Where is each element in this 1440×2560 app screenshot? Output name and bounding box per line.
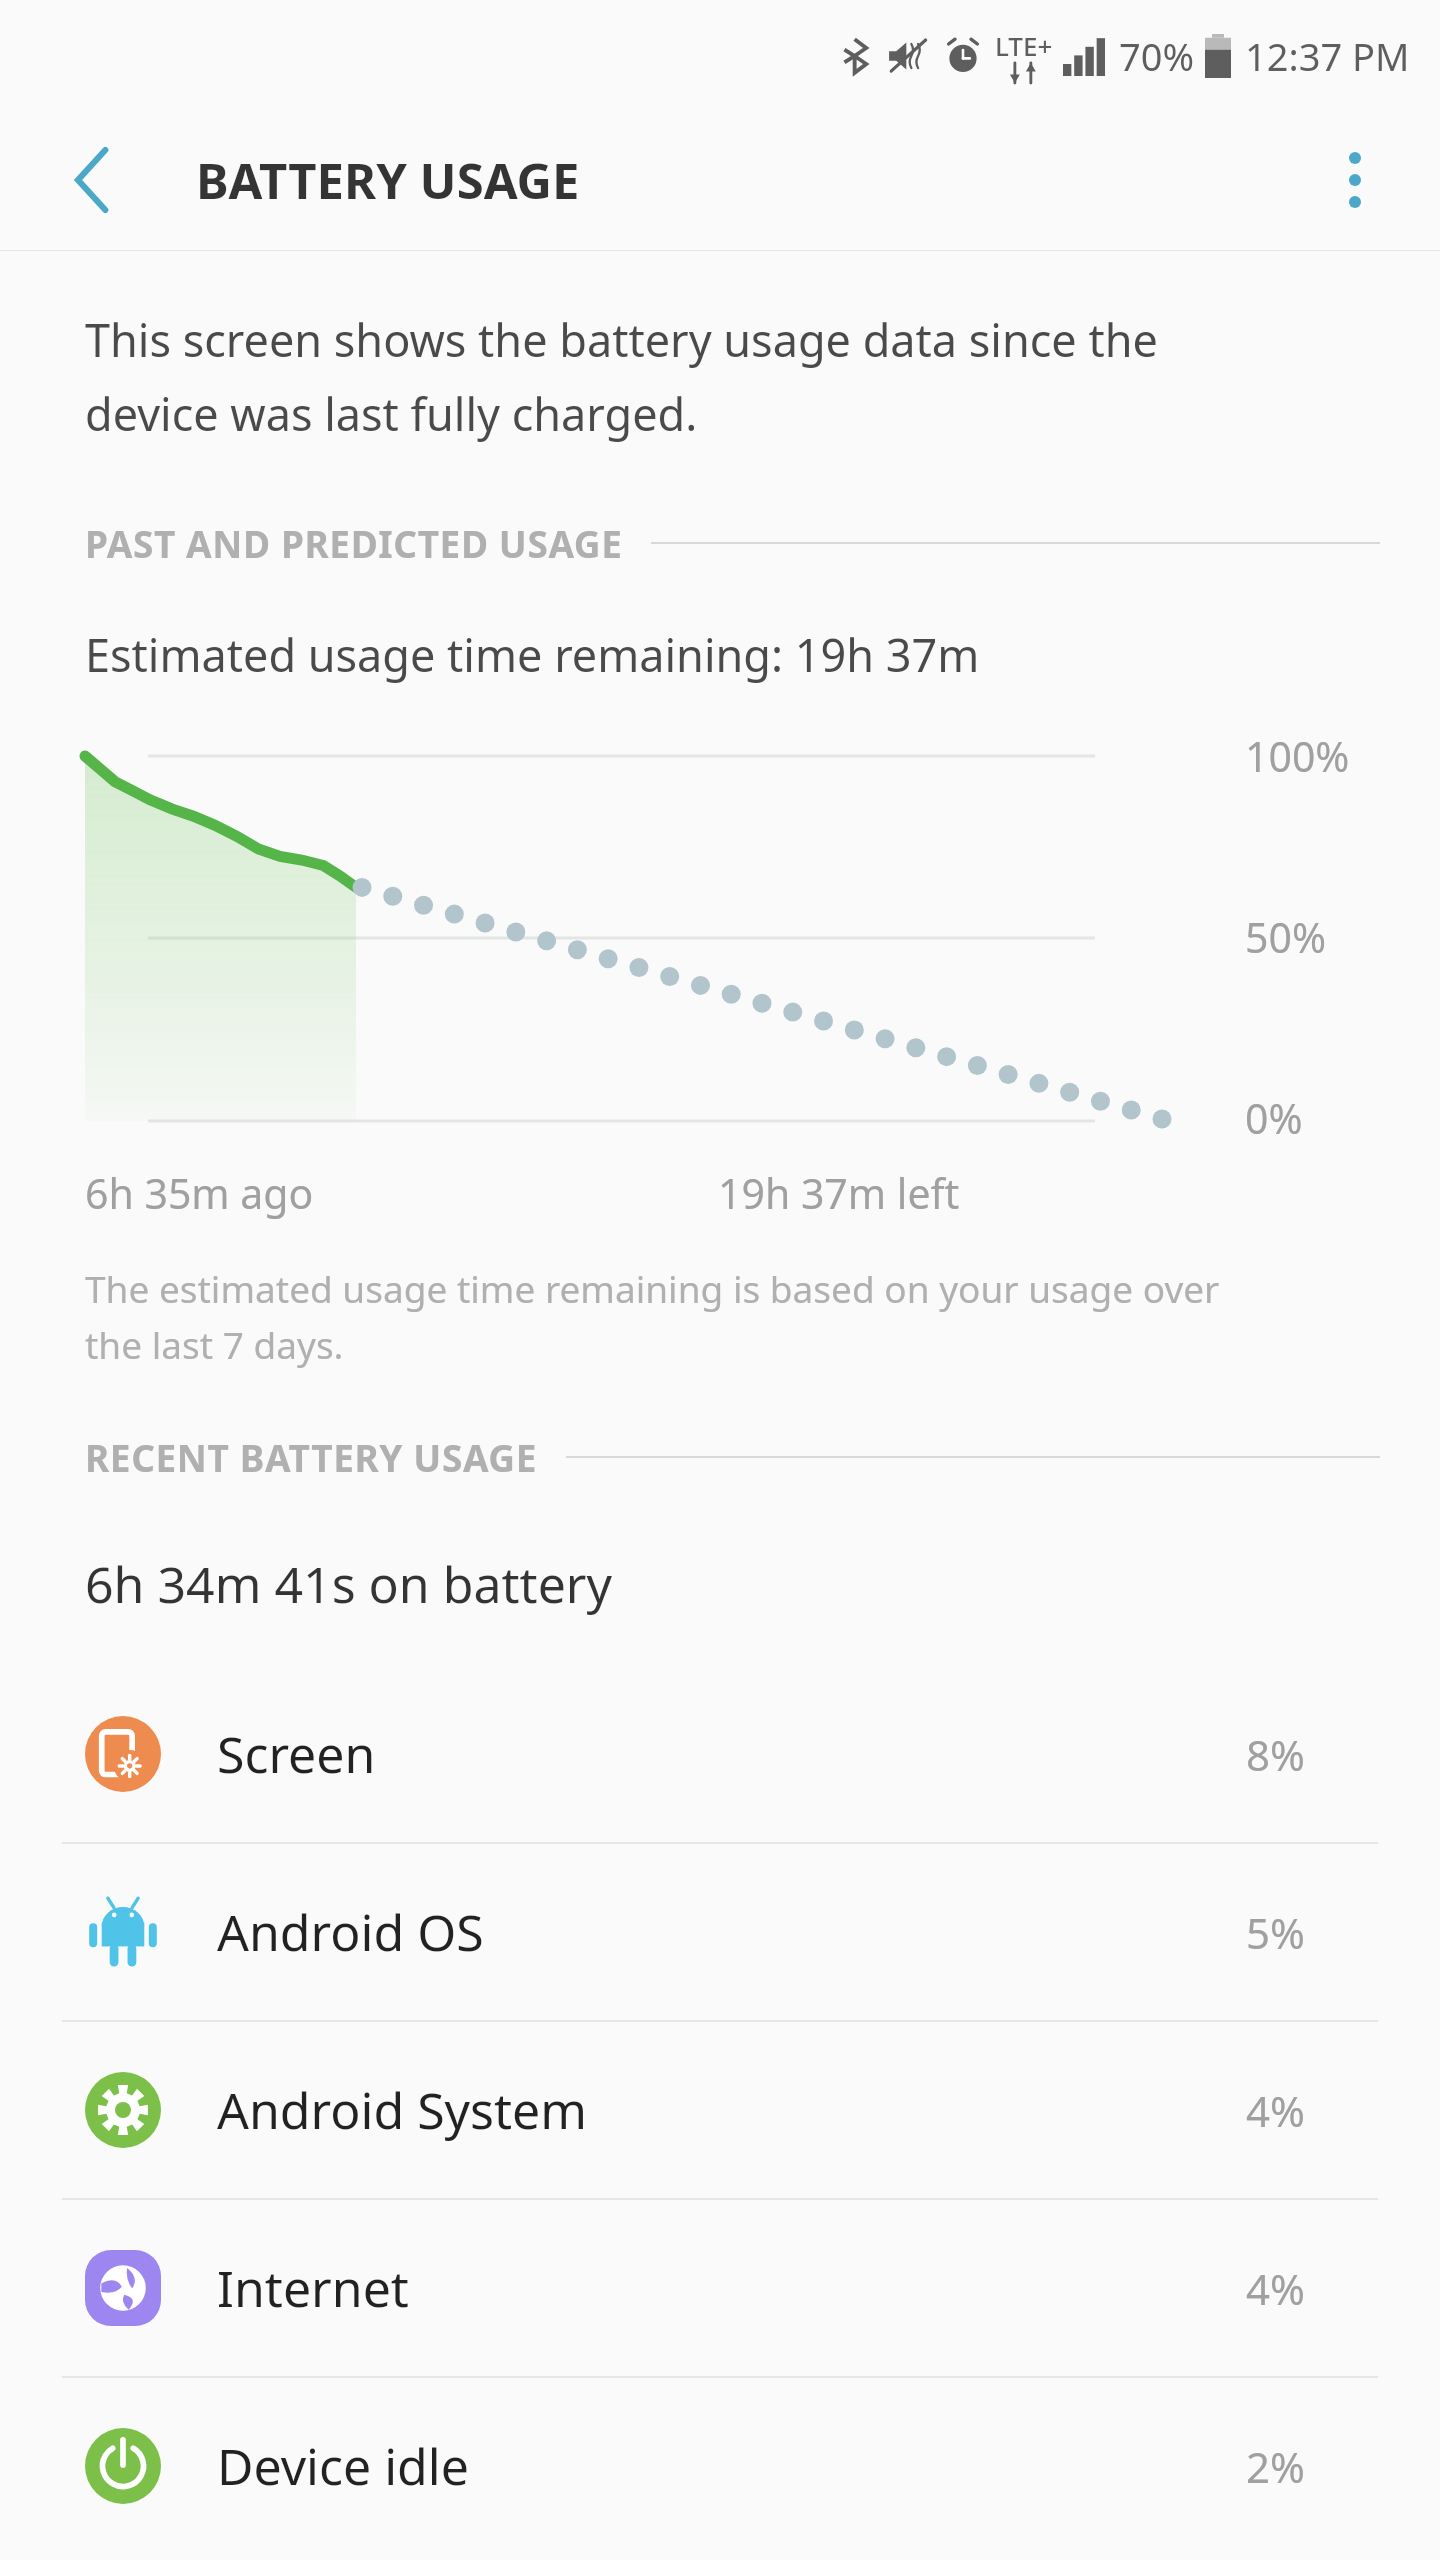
button[interactable]: Android OS bbox=[0, 1844, 1440, 2020]
staticText: Device idle bbox=[217, 2432, 1195, 2500]
staticText: Android System bbox=[217, 2076, 1195, 2144]
staticText: The estimated usage time remaining is ba… bbox=[85, 1263, 1220, 1370]
staticText: Internet bbox=[217, 2254, 1195, 2322]
staticText: 12:37 PM bbox=[1245, 30, 1410, 82]
button[interactable]: Android System bbox=[0, 2022, 1440, 2198]
staticText: 100% bbox=[1245, 728, 1350, 784]
staticText: PAST AND PREDICTED USAGE bbox=[85, 518, 623, 568]
staticText: Android OS bbox=[217, 1898, 1195, 1966]
staticText: 4% bbox=[1195, 2260, 1305, 2317]
button[interactable]: Screen bbox=[0, 1666, 1440, 1842]
staticText: BATTERY USAGE bbox=[196, 147, 580, 214]
staticText: RECENT BATTERY USAGE bbox=[85, 1432, 538, 1482]
staticText: LTE+ bbox=[995, 28, 1053, 63]
staticText: 6h 34m 41s on battery bbox=[85, 1550, 612, 1618]
staticText: 5% bbox=[1195, 1904, 1305, 1961]
staticText: 4% bbox=[1195, 2082, 1305, 2139]
button[interactable]: Device idle bbox=[0, 2378, 1440, 2554]
staticText: Estimated usage time remaining: 19h 37m bbox=[85, 624, 980, 685]
button[interactable]: More options bbox=[1310, 135, 1400, 225]
button[interactable]: Back bbox=[48, 135, 138, 225]
staticText: 2% bbox=[1195, 2438, 1305, 2495]
staticText: 8% bbox=[1195, 1726, 1305, 1783]
staticText: 6h 35m ago bbox=[85, 1165, 314, 1221]
staticText: 19h 37m left bbox=[718, 1165, 960, 1221]
button[interactable]: Internet bbox=[0, 2200, 1440, 2376]
staticText: 0% bbox=[1245, 1090, 1303, 1146]
staticText: Screen bbox=[217, 1720, 1195, 1788]
staticText: 70% bbox=[1119, 30, 1195, 82]
staticText: 50% bbox=[1245, 909, 1326, 965]
staticText: This screen shows the battery usage data… bbox=[85, 309, 1158, 444]
